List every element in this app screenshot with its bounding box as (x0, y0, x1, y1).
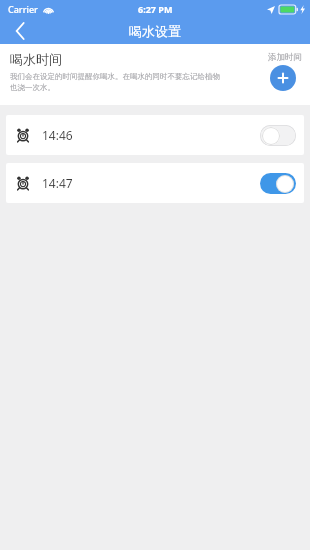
staticText: 6:27 PM (138, 3, 173, 15)
button[interactable]: 14:46 (6, 115, 304, 155)
staticText: 14:46 (42, 127, 73, 143)
button[interactable]: Alarm off (260, 125, 296, 146)
button[interactable]: 14:47 (6, 163, 304, 203)
button[interactable]: Back (0, 18, 40, 44)
staticText: 我们会在设定的时间提醒你喝水。在喝水的同时不要忘记给植物 也浇一次水。 (10, 72, 220, 92)
button[interactable]: Alarm on (260, 173, 296, 194)
button[interactable]: Add time (270, 65, 296, 91)
staticText: Carrier (8, 3, 38, 15)
staticText: 喝水时间 (10, 51, 62, 67)
staticText: 添加时间 (268, 52, 302, 63)
staticText: 喝水设置 (129, 23, 181, 39)
staticText: 14:47 (42, 175, 73, 191)
